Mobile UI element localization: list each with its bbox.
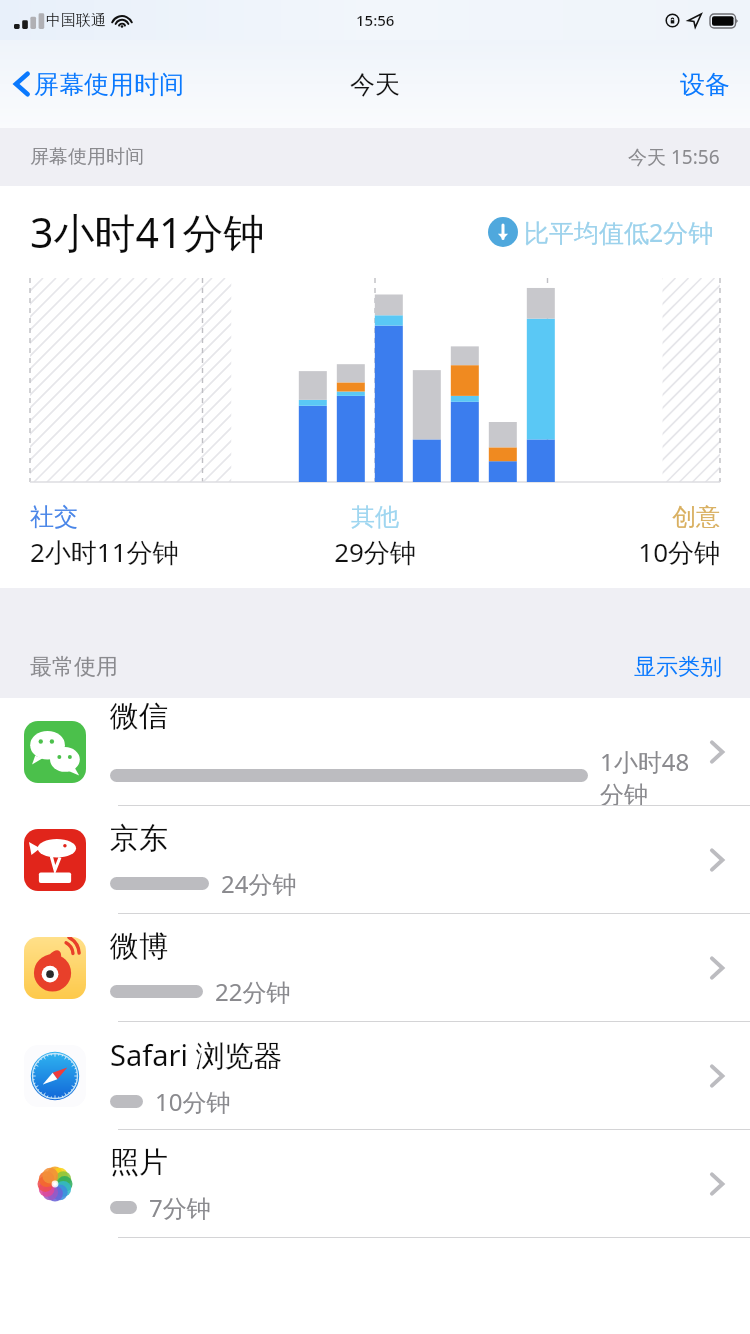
button[interactable]: Safari 浏览器 (0, 1022, 750, 1130)
staticText: 10分钟 (490, 534, 720, 570)
staticText: 22分钟 (215, 975, 291, 1008)
button[interactable]: 设备 (660, 59, 750, 110)
staticText: 10分钟 (155, 1085, 231, 1118)
staticText: 29分钟 (260, 534, 490, 570)
staticText: 屏幕使用时间 (30, 145, 144, 169)
button[interactable]: 照片 (0, 1130, 750, 1238)
button[interactable]: 屏幕使用时间 (0, 62, 192, 106)
staticText: 微信 (110, 698, 168, 735)
staticText: 微博 (110, 928, 168, 965)
staticText: 屏幕使用时间 (34, 69, 184, 100)
staticText: 1小时48分钟 (600, 745, 708, 806)
staticText: Safari 浏览器 (110, 1035, 283, 1075)
staticText: 京东 (110, 820, 168, 857)
staticText: 其他 (260, 502, 490, 532)
staticText: 社交 (30, 502, 260, 532)
staticText: 创意 (490, 502, 720, 532)
button[interactable]: 微博 (0, 914, 750, 1022)
button[interactable]: 显示类别 (606, 645, 750, 689)
staticText: 最常使用 (30, 653, 118, 681)
button[interactable]: 京东 (0, 806, 750, 914)
staticText: 今天 15:56 (628, 144, 720, 170)
staticText: 24分钟 (221, 867, 297, 900)
staticText: 7分钟 (149, 1191, 211, 1224)
staticText: 3小时41分钟 (30, 204, 265, 260)
staticText: 比平均值低2分钟 (524, 215, 724, 249)
staticText: 2小时11分钟 (30, 534, 260, 570)
staticText: 中国联通 (46, 11, 106, 30)
button[interactable]: 微信 (0, 698, 750, 806)
staticText: 照片 (110, 1144, 168, 1181)
staticText: 今天 (350, 69, 400, 100)
staticText: 15:56 (356, 10, 395, 30)
